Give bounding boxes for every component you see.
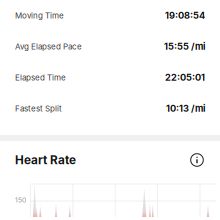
button[interactable]: Heart rate info bbox=[189, 152, 205, 168]
staticText: 19:08:54 bbox=[165, 10, 205, 21]
staticText: 150 bbox=[15, 196, 26, 204]
staticText: Heart Rate bbox=[15, 153, 76, 167]
button[interactable]: Avg Elapsed Pace bbox=[0, 31, 220, 62]
button[interactable]: Fastest Split bbox=[0, 93, 220, 124]
staticText: 15:55 /mi bbox=[164, 41, 205, 52]
staticText: Moving Time bbox=[15, 11, 64, 20]
button[interactable]: Moving Time bbox=[0, 0, 220, 31]
staticText: Avg Elapsed Pace bbox=[15, 42, 82, 51]
button[interactable]: Elapsed Time bbox=[0, 62, 220, 93]
staticText: 22:05:01 bbox=[165, 72, 205, 83]
staticText: Elapsed Time bbox=[15, 73, 66, 82]
staticText: 10:13 /mi bbox=[166, 103, 205, 114]
staticText: Fastest Split bbox=[15, 104, 62, 113]
